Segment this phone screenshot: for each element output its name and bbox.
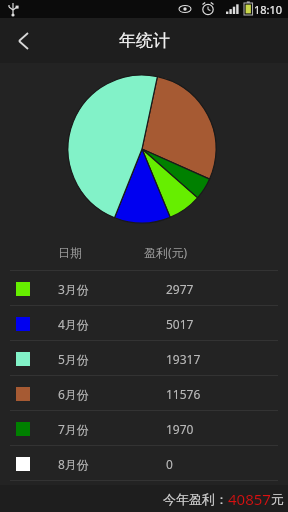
staticText: 3月份 [58, 281, 89, 297]
button[interactable]: 7月份 [0, 411, 288, 446]
button[interactable]: Back [0, 18, 46, 63]
staticText: 今年盈利： [163, 491, 228, 507]
staticText: 年统计 [119, 30, 170, 51]
staticText: 1970 [166, 421, 194, 437]
staticText: 40857 [228, 489, 271, 509]
staticText: 盈利(元) [144, 244, 188, 260]
button[interactable]: 8月份 [0, 446, 288, 481]
staticText: 6月份 [58, 386, 89, 402]
staticText: 5017 [166, 316, 194, 332]
staticText: 8月份 [58, 456, 89, 472]
staticText: 7月份 [58, 421, 89, 437]
staticText: 2977 [166, 281, 194, 297]
staticText: 4月份 [58, 316, 89, 332]
button[interactable]: 5月份 [0, 341, 288, 376]
staticText: 日期 [58, 245, 82, 260]
staticText: 0 [166, 456, 173, 472]
staticText: 元 [271, 491, 284, 507]
button[interactable]: 4月份 [0, 306, 288, 341]
staticText: 19317 [166, 351, 201, 367]
staticText: 5月份 [58, 351, 89, 367]
button[interactable]: 3月份 [0, 271, 288, 306]
staticText: 11576 [166, 386, 201, 402]
button[interactable]: 6月份 [0, 376, 288, 411]
staticText: 18:10 [254, 2, 283, 17]
